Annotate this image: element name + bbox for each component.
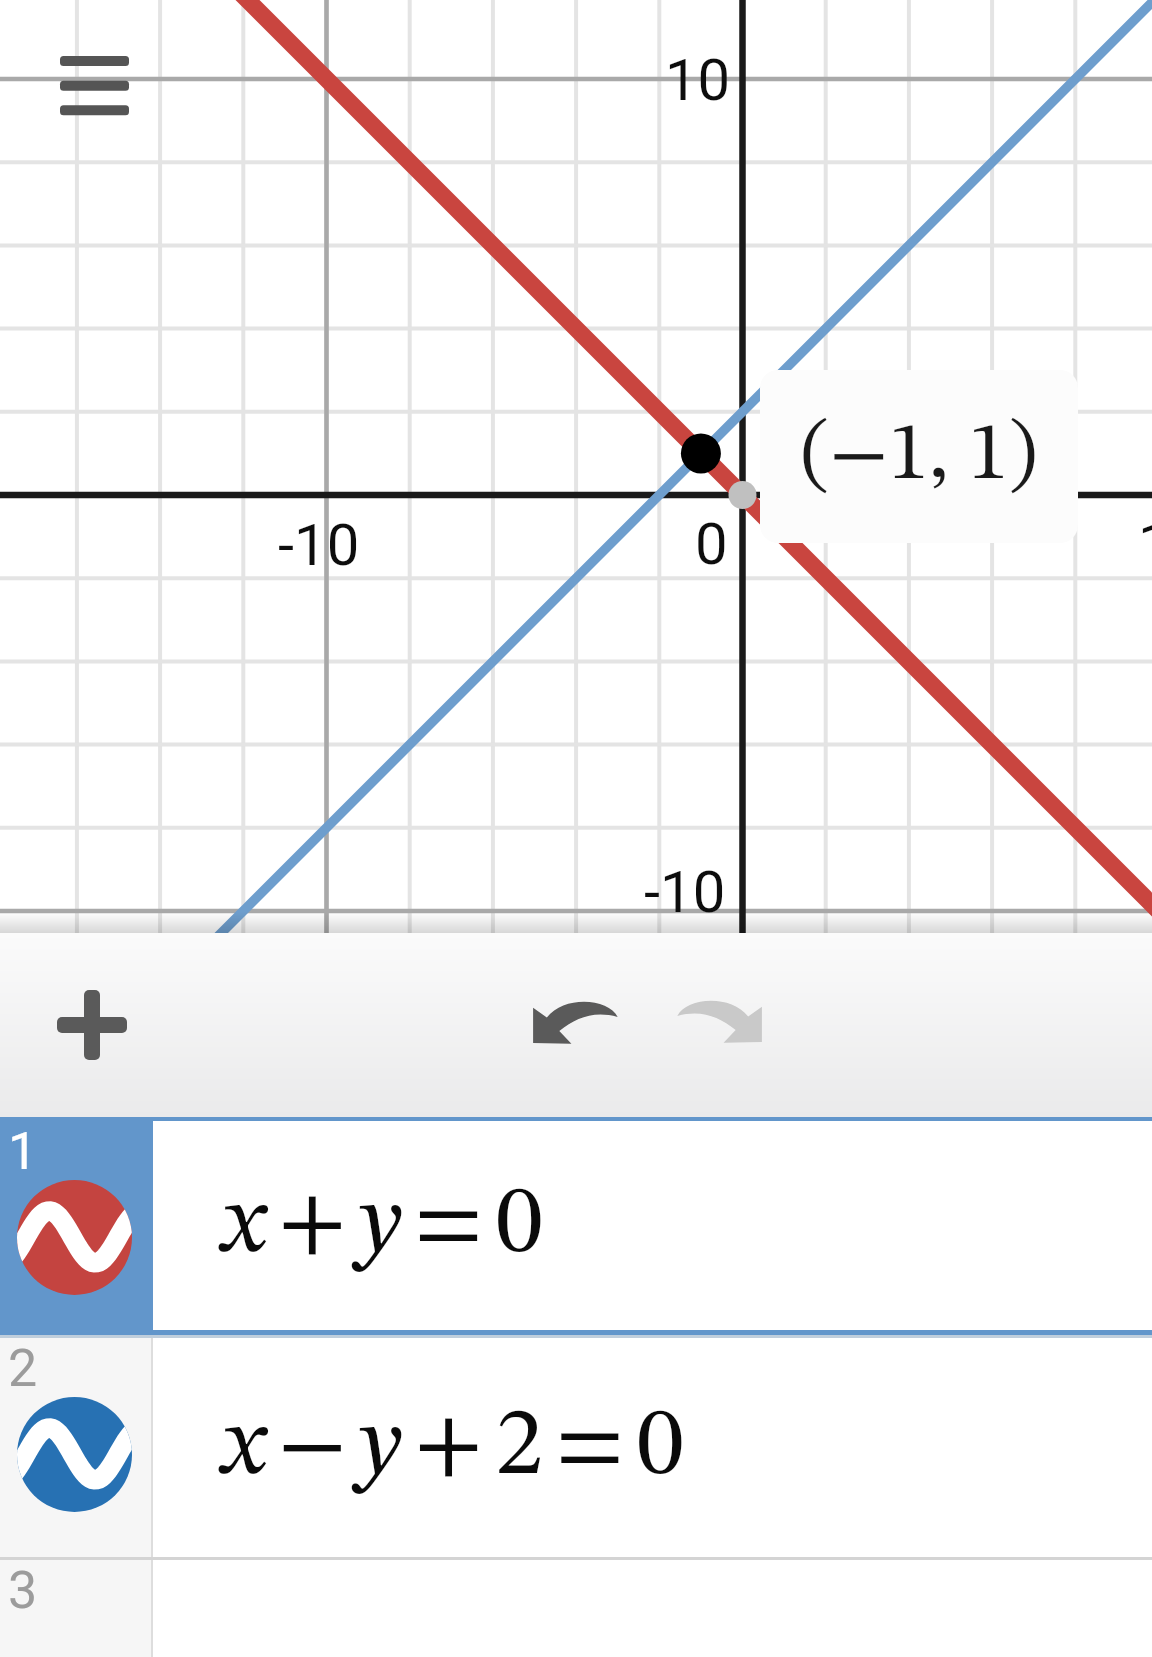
button[interactable]: (−1, 1): [760, 370, 1078, 543]
button[interactable]: Redo: [637, 958, 807, 1086]
button[interactable]: 2: [0, 1338, 1152, 1557]
staticText: -10: [644, 858, 726, 926]
staticText: 2: [8, 1338, 38, 1399]
button[interactable]: Undo: [490, 959, 660, 1087]
staticText: x + y = 0: [222, 1178, 543, 1274]
staticText: x − y + 2 = 0: [222, 1400, 685, 1496]
staticText: -10: [278, 511, 360, 579]
button[interactable]: Menu: [20, 16, 168, 156]
staticText: 10: [665, 46, 731, 114]
staticText: 1: [1138, 510, 1152, 578]
staticText: 0: [695, 510, 728, 578]
button[interactable]: 1: [0, 1121, 1152, 1330]
button[interactable]: Add: [22, 955, 162, 1095]
staticText: 3: [8, 1560, 38, 1621]
staticText: (−1, 1): [801, 416, 1037, 498]
button[interactable]: 3: [0, 1560, 1152, 1657]
staticText: 1: [8, 1121, 38, 1182]
